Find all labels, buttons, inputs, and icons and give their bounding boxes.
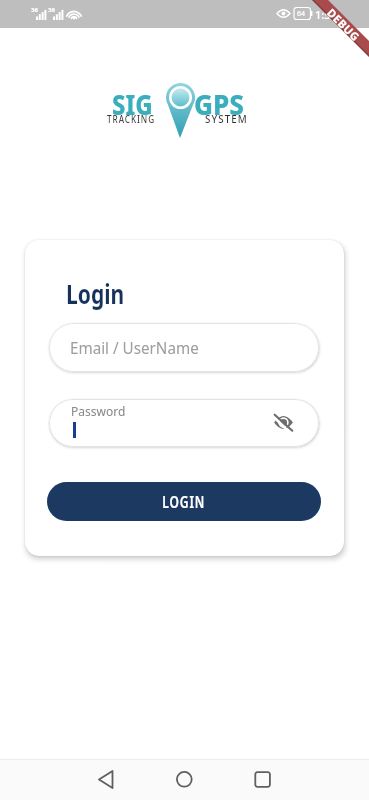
button[interactable]: Password [49, 399, 319, 447]
staticText: 1:59 [315, 7, 337, 22]
staticText: Login [66, 275, 124, 312]
staticText: SIG [112, 85, 153, 123]
staticText: LOGIN [162, 491, 206, 513]
staticText: DEBUG [324, 5, 364, 44]
button[interactable] [86, 759, 126, 800]
button[interactable] [242, 759, 282, 800]
button[interactable] [164, 759, 204, 800]
button[interactable]: Email / UserName [49, 323, 319, 372]
staticText: Password [71, 403, 126, 419]
staticText: 64 [297, 9, 306, 19]
staticText: GPS [194, 85, 244, 123]
button[interactable] [273, 412, 294, 433]
staticText: TRACKING [107, 111, 156, 126]
button[interactable]: LOGIN [47, 482, 321, 521]
staticText: 36 [31, 6, 38, 14]
staticText: SYSTEM [205, 111, 249, 126]
staticText: 36 [48, 6, 55, 14]
staticText: Email / UserName [70, 337, 199, 359]
